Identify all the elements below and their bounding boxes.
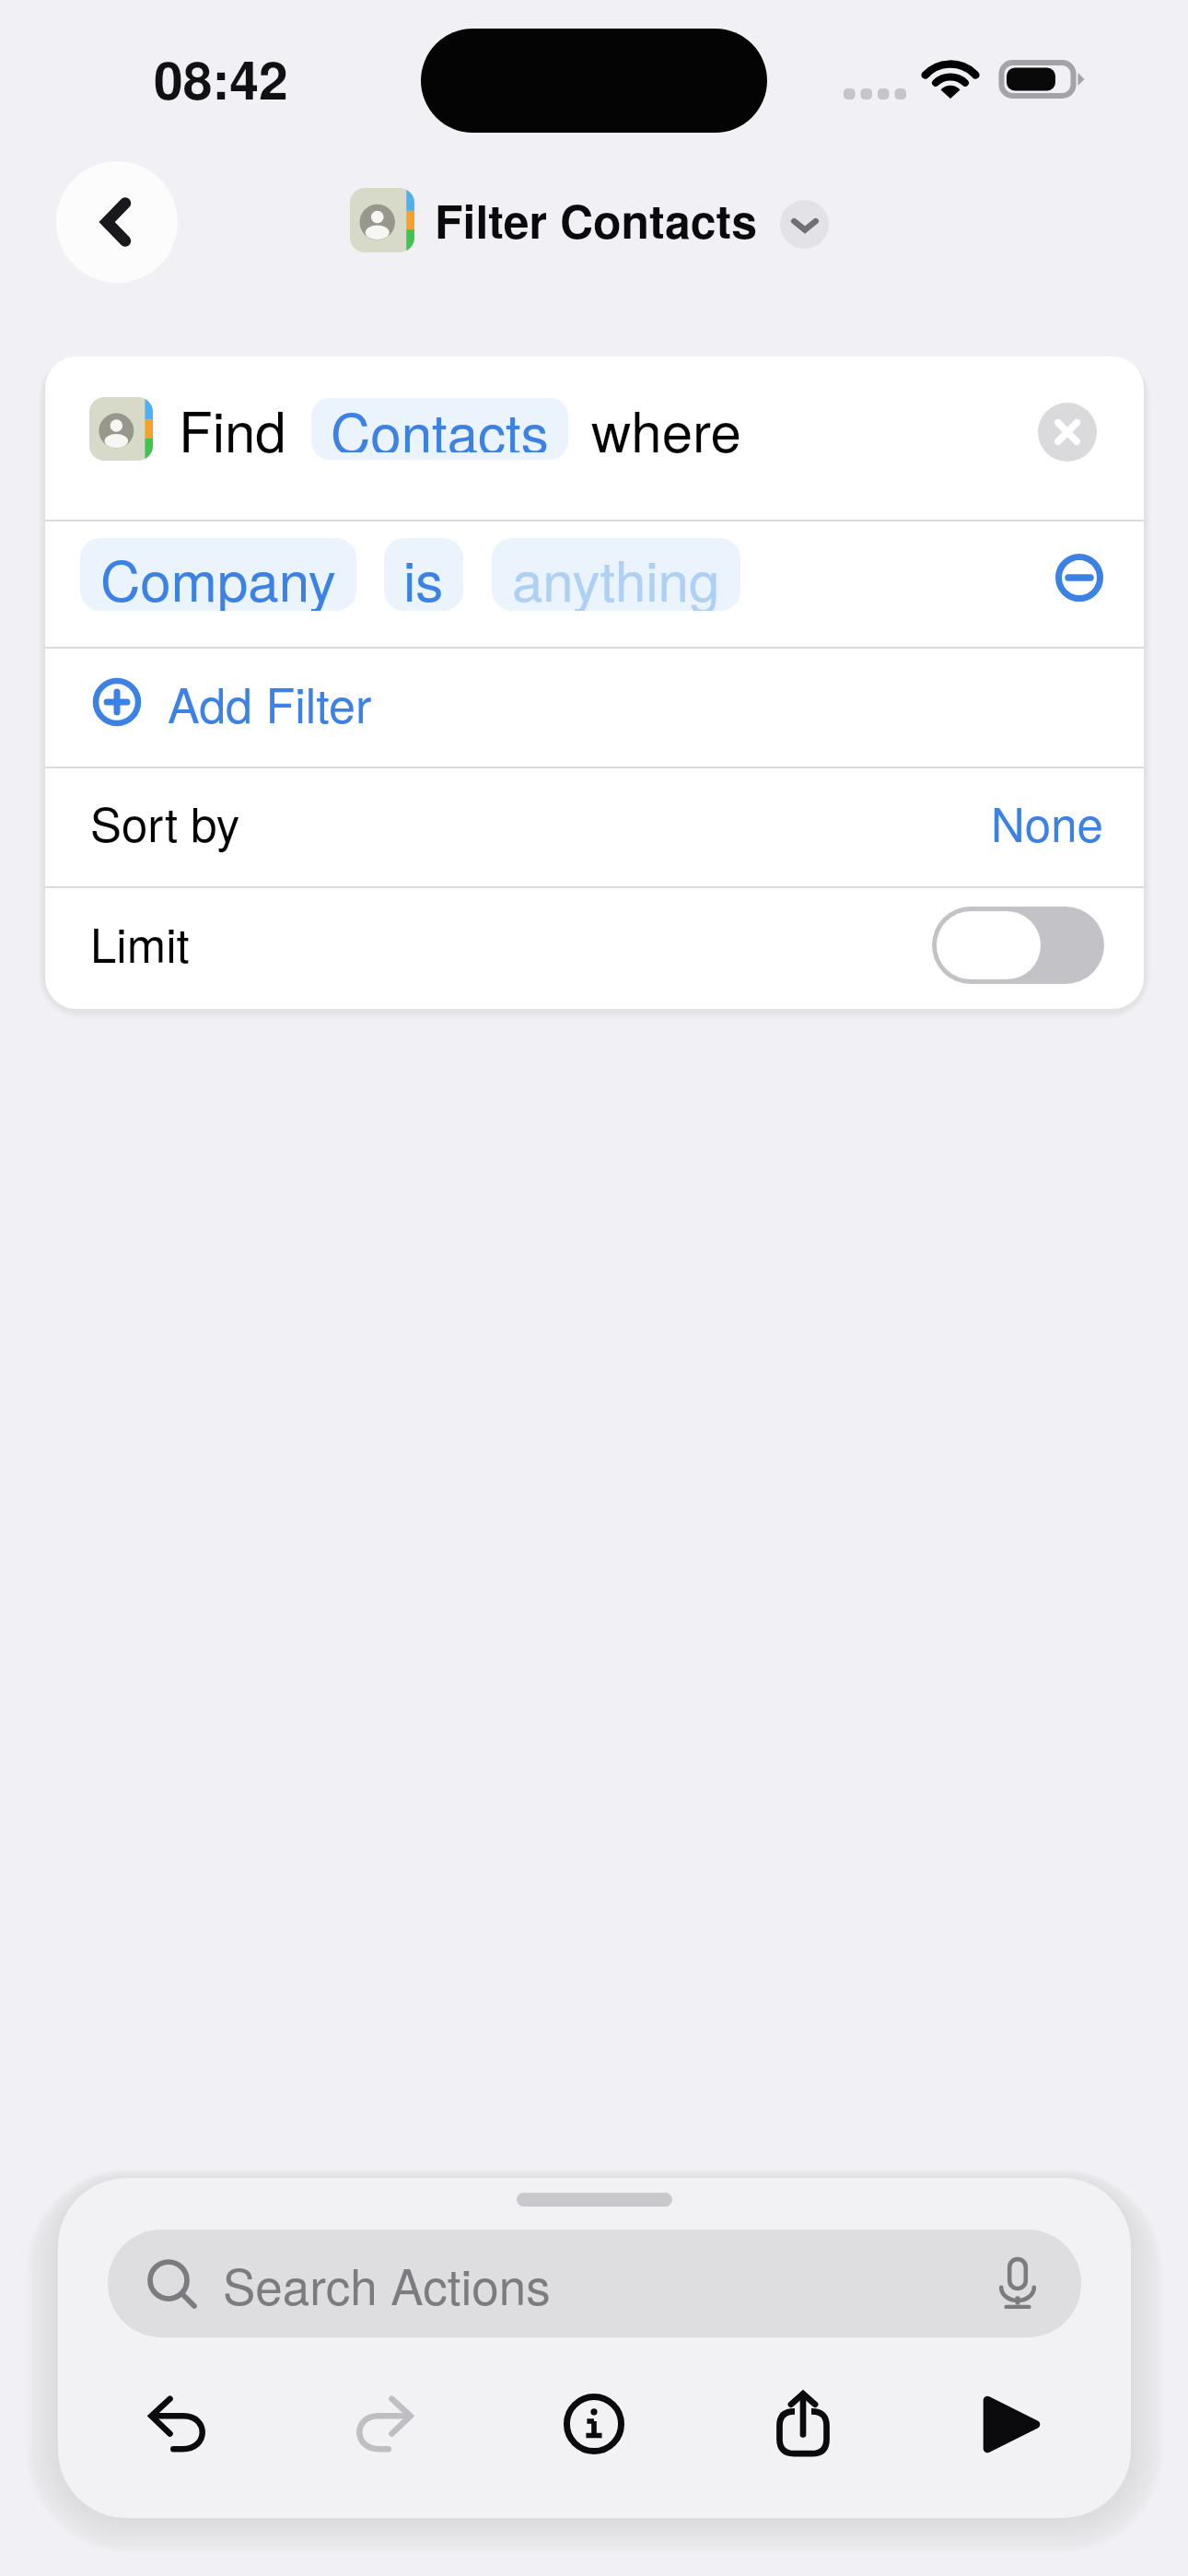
staticText: Limit xyxy=(90,908,190,976)
staticText: is xyxy=(403,538,444,611)
button[interactable]: Search Actions xyxy=(108,2230,1081,2337)
button[interactable]: Filter Contacts xyxy=(350,187,829,253)
button[interactable]: Details xyxy=(489,2354,698,2494)
button[interactable]: Contacts xyxy=(311,398,568,460)
button[interactable]: Run shortcut xyxy=(907,2354,1116,2494)
button[interactable]: Delete action xyxy=(1038,403,1097,462)
button[interactable]: Find xyxy=(45,357,1144,520)
staticText: Contacts xyxy=(331,398,549,452)
button[interactable]: Add Filter xyxy=(45,649,1144,767)
staticText: Company xyxy=(100,538,336,611)
button[interactable]: Sort by xyxy=(45,768,1144,886)
staticText: where xyxy=(591,389,741,468)
button[interactable]: Remove filter xyxy=(1052,550,1107,605)
button[interactable]: anything xyxy=(492,538,740,611)
button[interactable]: is xyxy=(384,538,463,611)
staticText: Sort by xyxy=(90,788,240,855)
staticText: Filter Contacts xyxy=(435,187,758,253)
button[interactable]: Voice search xyxy=(989,2255,1046,2313)
button[interactable]: Show action details xyxy=(780,200,829,249)
button[interactable]: Company xyxy=(80,538,356,611)
button[interactable]: Share xyxy=(698,2354,907,2494)
button[interactable]: Back xyxy=(56,161,178,283)
button[interactable]: Limit toggle, off xyxy=(932,907,1104,984)
staticText: None xyxy=(991,788,1103,855)
staticText: anything xyxy=(512,538,720,611)
staticText: Find xyxy=(179,389,286,468)
staticText: 08:42 xyxy=(154,41,288,116)
button[interactable]: Company xyxy=(45,521,1144,647)
staticText: Search Actions xyxy=(223,2249,551,2319)
button[interactable]: Redo xyxy=(281,2354,489,2494)
button[interactable]: Undo xyxy=(73,2354,281,2494)
staticText: Add Filter xyxy=(168,668,372,736)
